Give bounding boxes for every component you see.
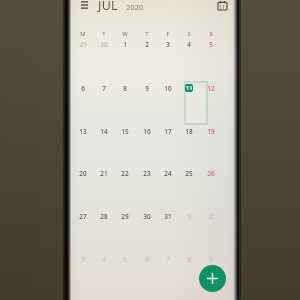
staticText: 7 [166, 255, 170, 264]
staticText: 20 [79, 169, 87, 178]
button[interactable]: 8 [116, 81, 134, 95]
staticText: 10 [164, 84, 172, 93]
button[interactable]: 13 [74, 124, 92, 138]
button[interactable]: 6 [138, 252, 156, 266]
staticText: 26 [207, 169, 215, 178]
staticText: M [80, 30, 86, 38]
staticText: 3 [81, 255, 85, 264]
button[interactable]: 1 [180, 209, 198, 223]
staticText: 14 [100, 127, 108, 136]
staticText: 28 [100, 212, 108, 221]
staticText: JUL [98, 0, 118, 14]
button[interactable]: 19 [202, 124, 220, 138]
button[interactable]: 22 [116, 166, 134, 180]
staticText: F [166, 30, 170, 38]
staticText: T [102, 30, 106, 38]
button[interactable]: 27 [74, 209, 92, 223]
staticText: 31 [164, 212, 172, 221]
staticText: 30 [143, 212, 151, 221]
staticText: 17 [164, 127, 172, 136]
button[interactable]: 28 [95, 209, 113, 223]
staticText: 1 [187, 212, 191, 221]
button[interactable]: 24 [159, 166, 177, 180]
button[interactable]: 2 [138, 37, 156, 51]
button[interactable]: Create event [199, 265, 226, 292]
staticText: 27 [79, 212, 87, 221]
button[interactable]: Open navigation drawer [77, 0, 92, 13]
button[interactable]: 7 [159, 252, 177, 266]
staticText: 24 [164, 169, 172, 178]
staticText: 8 [123, 84, 127, 93]
button[interactable]: 3 [159, 37, 177, 51]
button[interactable]: 9 [138, 81, 156, 95]
staticText: 16 [143, 127, 151, 136]
staticText: 9 [145, 84, 149, 93]
staticText: 5 [123, 255, 127, 264]
button[interactable]: 4 [95, 252, 113, 266]
button[interactable]: 18 [180, 124, 198, 138]
staticText: 25 [185, 169, 193, 178]
staticText: 3 [166, 40, 170, 49]
button[interactable]: 9 [202, 252, 220, 266]
button[interactable]: 3 [74, 252, 92, 266]
staticText: 13 [79, 127, 87, 136]
button[interactable]: JUL [98, 0, 118, 14]
button[interactable]: 31 [159, 209, 177, 223]
button[interactable]: 14 [95, 124, 113, 138]
staticText: 11 [219, 3, 225, 10]
staticText: 2 [145, 40, 149, 49]
staticText: 22 [121, 169, 129, 178]
button[interactable]: 11 [185, 84, 193, 92]
staticText: S [209, 30, 213, 38]
staticText: 12 [207, 84, 215, 93]
staticText: S [187, 30, 191, 38]
staticText: 21 [100, 169, 108, 178]
staticText: 9 [209, 255, 213, 264]
button[interactable]: 15 [116, 124, 134, 138]
button[interactable]: 25 [180, 166, 198, 180]
staticText: 18 [185, 127, 193, 136]
staticText: 4 [102, 255, 106, 264]
button[interactable]: 4 [180, 37, 198, 51]
staticText: W [122, 30, 128, 38]
button[interactable]: 5 [202, 37, 220, 51]
button[interactable]: 23 [138, 166, 156, 180]
staticText: 2020 [126, 2, 144, 12]
button[interactable]: 8 [180, 252, 198, 266]
button[interactable]: 1 [116, 37, 134, 51]
button[interactable]: 10 [159, 81, 177, 95]
staticText: 2 [209, 212, 213, 221]
staticText: T [145, 30, 149, 38]
button[interactable]: Go to today [214, 0, 230, 13]
staticText: 15 [121, 127, 129, 136]
button[interactable]: 16 [138, 124, 156, 138]
button[interactable]: 12 [202, 81, 220, 95]
staticText: 7 [102, 84, 106, 93]
staticText: 4 [187, 40, 191, 49]
staticText: 6 [145, 255, 149, 264]
staticText: 6 [81, 84, 85, 93]
button[interactable]: 29 [74, 37, 92, 51]
button[interactable]: 29 [116, 209, 134, 223]
staticText: 29 [79, 40, 87, 49]
button[interactable]: 2 [202, 209, 220, 223]
button[interactable]: 26 [202, 166, 220, 180]
button[interactable]: 30 [95, 37, 113, 51]
button[interactable]: 7 [95, 81, 113, 95]
staticText: 8 [187, 255, 191, 264]
button[interactable]: 6 [74, 81, 92, 95]
button[interactable]: 17 [159, 124, 177, 138]
staticText: 19 [207, 127, 215, 136]
staticText: 1 [123, 40, 127, 49]
staticText: 30 [100, 40, 108, 49]
staticText: 29 [121, 212, 129, 221]
button[interactable]: 20 [74, 166, 92, 180]
staticText: 5 [209, 40, 213, 49]
button[interactable]: 5 [116, 252, 134, 266]
staticText: 23 [143, 169, 151, 178]
button[interactable]: 21 [95, 166, 113, 180]
button[interactable]: 30 [138, 209, 156, 223]
staticText: 11 [186, 84, 193, 92]
